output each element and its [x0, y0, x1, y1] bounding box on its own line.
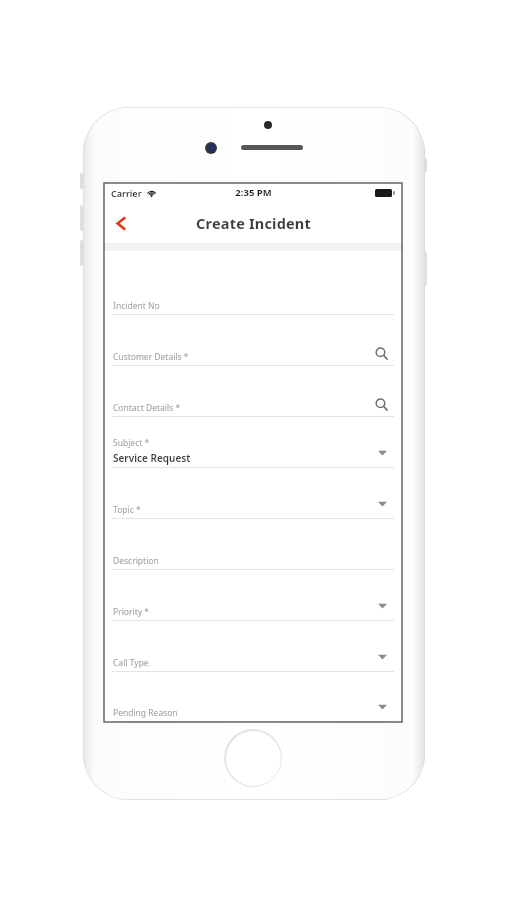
- button[interactable]: Search Contact Details *: [370, 393, 392, 415]
- staticText: Subject *: [113, 437, 150, 449]
- button[interactable]: Call Type: [112, 621, 394, 672]
- button[interactable]: Open Call Type options: [373, 648, 391, 666]
- staticText: Customer Details *: [113, 351, 189, 363]
- staticText: 2:35 PM: [235, 186, 272, 199]
- staticText: Topic *: [113, 504, 141, 516]
- button[interactable]: Incident No: [112, 264, 394, 315]
- button[interactable]: Search Customer Details *: [370, 342, 392, 364]
- button[interactable]: Open Subject * options: [373, 444, 391, 462]
- button[interactable]: Contact Details *: [112, 366, 394, 417]
- staticText: Create Incident: [196, 213, 311, 233]
- staticText: Incident No: [113, 300, 160, 312]
- button[interactable]: Open Priority * options: [373, 597, 391, 615]
- button[interactable]: Description: [112, 519, 394, 570]
- button[interactable]: Subject *: [112, 417, 394, 468]
- staticText: Description: [113, 555, 159, 567]
- button[interactable]: Open Pending Reason options: [373, 698, 391, 716]
- button[interactable]: Priority *: [112, 570, 394, 621]
- staticText: Pending Reason: [113, 707, 178, 719]
- staticText: Call Type: [113, 657, 149, 669]
- button[interactable]: Back: [104, 206, 138, 240]
- staticText: Carrier: [111, 187, 142, 199]
- staticText: Contact Details *: [113, 402, 181, 414]
- button[interactable]: Customer Details *: [112, 315, 394, 366]
- staticText: Service Request: [113, 451, 191, 465]
- button[interactable]: Open Topic * options: [373, 495, 391, 513]
- staticText: Priority *: [113, 606, 149, 618]
- button[interactable]: Topic *: [112, 468, 394, 519]
- button[interactable]: Pending Reason: [112, 672, 394, 722]
